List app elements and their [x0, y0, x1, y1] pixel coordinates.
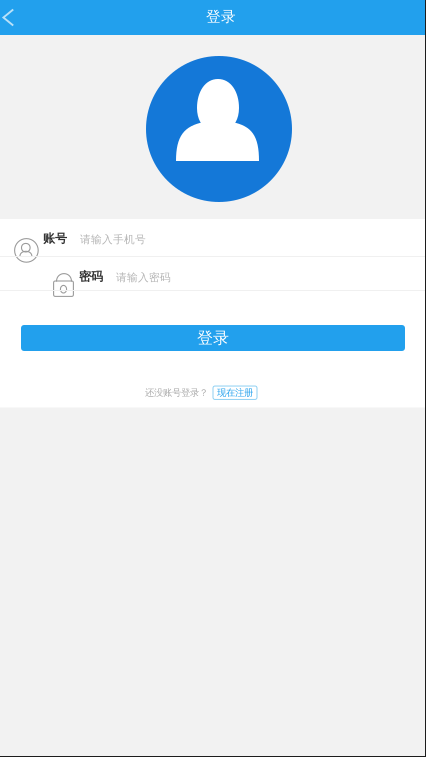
- staticText: 请输入密码: [116, 271, 171, 284]
- staticText: 密码: [79, 269, 103, 284]
- staticText: 请输入手机号: [80, 233, 146, 246]
- button[interactable]: 现在注册: [213, 386, 257, 399]
- button[interactable]: 密码: [0, 257, 426, 290]
- button[interactable]: 登录: [21, 325, 405, 351]
- button[interactable]: 账号: [0, 219, 426, 256]
- staticText: 账号: [43, 231, 67, 246]
- button[interactable]: Back: [0, 0, 29, 35]
- staticText: 登录: [197, 328, 229, 348]
- staticText: 登录: [206, 7, 236, 25]
- staticText: 现在注册: [217, 387, 253, 398]
- staticText: 还没账号登录？: [145, 387, 208, 398]
